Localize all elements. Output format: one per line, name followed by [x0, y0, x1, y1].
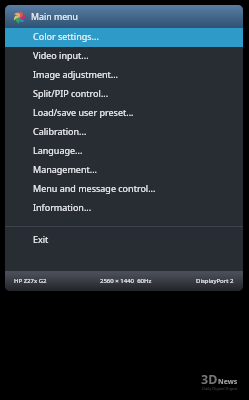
button[interactable]: Color settings...: [5, 28, 243, 47]
staticText: Language...: [33, 144, 83, 156]
staticText: Color settings...: [33, 30, 99, 42]
staticText: Daily Digital Digest: [202, 386, 238, 391]
staticText: Image adjustment...: [33, 68, 119, 80]
staticText: DisplayPort 2: [196, 277, 234, 285]
button[interactable]: Information...: [5, 199, 243, 218]
button[interactable]: Video input...: [5, 47, 243, 66]
staticText: Exit: [33, 233, 49, 245]
button[interactable]: Load/save user preset...: [5, 104, 243, 123]
button[interactable]: Language...: [5, 142, 243, 161]
staticText: 3D: [201, 371, 218, 388]
staticText: Calibration...: [33, 125, 87, 137]
button[interactable]: Split/PIP control...: [5, 85, 243, 104]
staticText: Management...: [33, 163, 97, 175]
staticText: Load/save user preset...: [33, 106, 134, 118]
staticText: Main menu: [31, 11, 78, 23]
button[interactable]: Management...: [5, 161, 243, 180]
staticText: HP Z27x G2: [14, 277, 47, 285]
button[interactable]: Calibration...: [5, 123, 243, 142]
staticText: Split/PIP control...: [33, 87, 109, 99]
button[interactable]: Exit: [5, 231, 243, 250]
button[interactable]: Image adjustment...: [5, 66, 243, 85]
button[interactable]: Main menu: [5, 5, 243, 28]
staticText: 2560 × 1440 60Hz: [100, 277, 152, 285]
staticText: Video input...: [33, 49, 89, 61]
staticText: News: [218, 377, 238, 387]
staticText: Information...: [33, 201, 92, 213]
staticText: Menu and message control...: [33, 182, 156, 194]
button[interactable]: Menu and message control...: [5, 180, 243, 199]
